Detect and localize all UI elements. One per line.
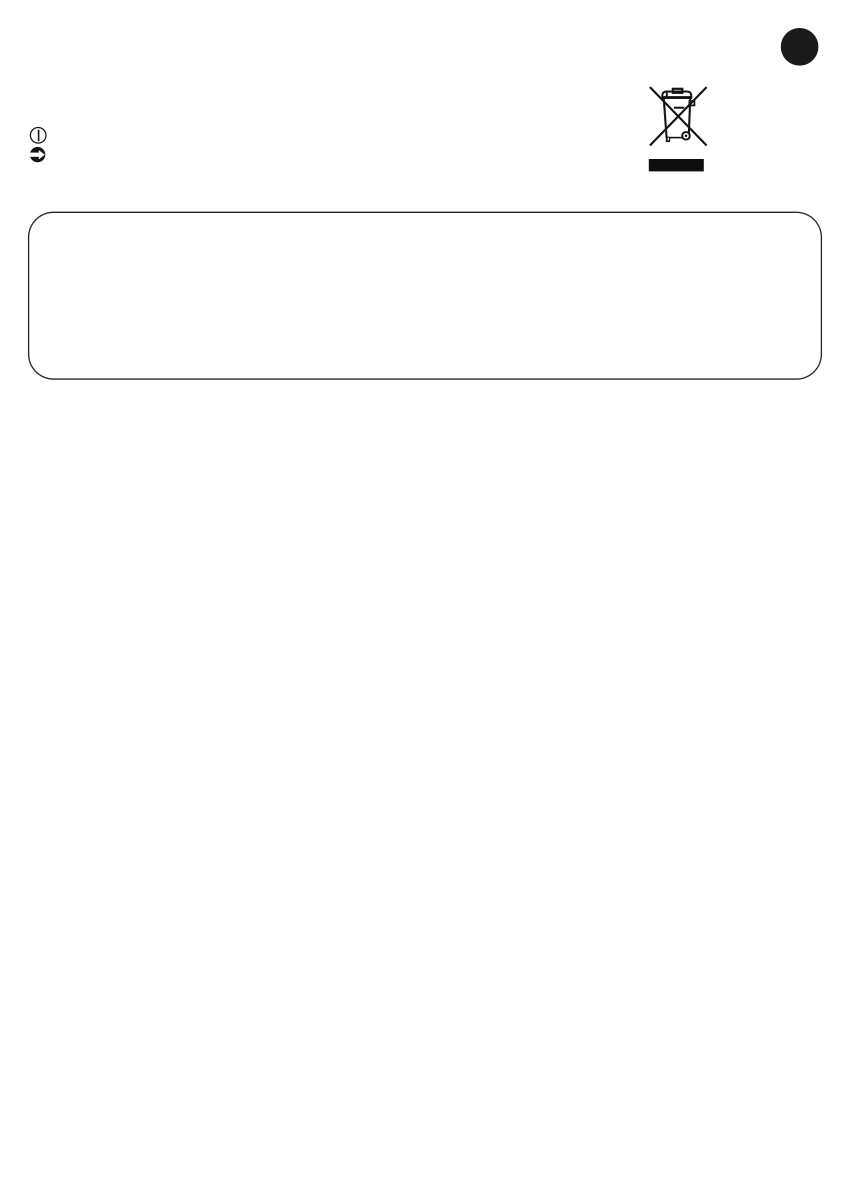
button[interactable]: Do not dispose of with household waste	[649, 85, 707, 173]
button[interactable]: Signal input	[28, 146, 48, 166]
button[interactable]: Page marker	[781, 28, 818, 66]
button[interactable]: Standby power	[29, 126, 47, 144]
